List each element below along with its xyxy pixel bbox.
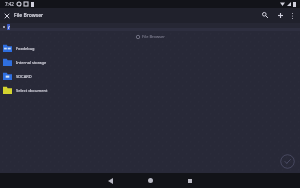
button[interactable]: Back bbox=[96, 173, 124, 188]
button[interactable]: Recents bbox=[176, 173, 204, 188]
button[interactable]: Foxdebug bbox=[0, 41, 300, 55]
staticText: Foxdebug bbox=[16, 46, 35, 51]
staticText: File Browser bbox=[142, 34, 165, 39]
button[interactable]: Home bbox=[136, 173, 164, 188]
staticText: / bbox=[8, 25, 10, 30]
button[interactable]: Search bbox=[259, 9, 271, 21]
button[interactable]: More options bbox=[287, 10, 298, 21]
button[interactable]: Internal storage bbox=[0, 55, 300, 69]
button[interactable]: Select document bbox=[0, 83, 300, 97]
button[interactable]: / bbox=[7, 24, 10, 30]
staticText: SDCARD bbox=[16, 74, 32, 79]
staticText: File Browser bbox=[14, 12, 44, 19]
button[interactable]: SDCARD bbox=[0, 69, 300, 83]
button[interactable]: Add bbox=[274, 9, 286, 21]
button[interactable]: Confirm bbox=[280, 154, 295, 169]
staticText: 7:42 bbox=[5, 1, 14, 7]
staticText: Internal storage bbox=[16, 60, 47, 65]
button[interactable]: Close bbox=[1, 10, 12, 21]
staticText: Select document bbox=[16, 88, 48, 93]
